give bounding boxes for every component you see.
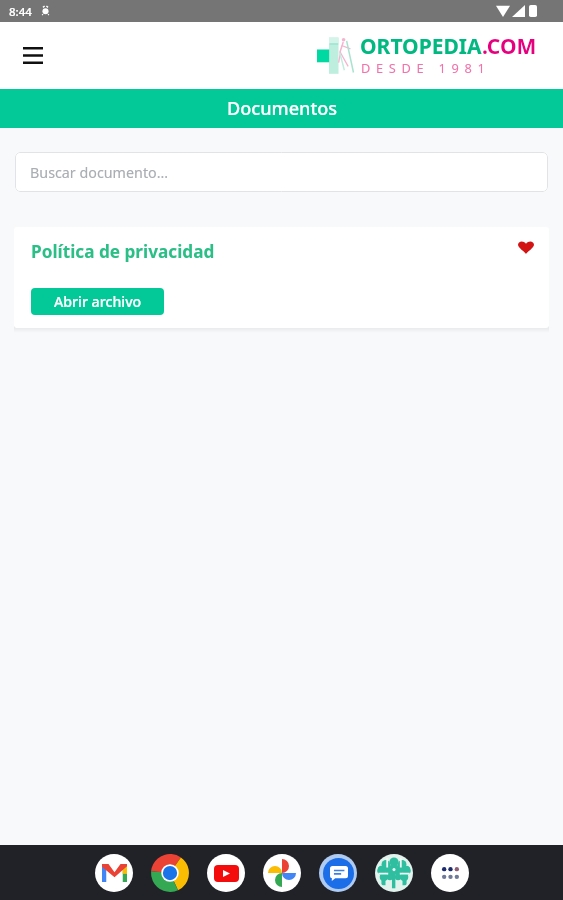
staticText: Buscar documento... — [30, 163, 169, 182]
button[interactable]: Gmail — [86, 845, 142, 900]
staticText: 8:44 — [9, 4, 32, 20]
button[interactable]: Política de privacidad — [14, 227, 549, 328]
button[interactable]: Mensajes — [310, 845, 366, 900]
staticText: Política de privacidad — [31, 240, 215, 263]
button[interactable]: Marcar como favorito — [513, 234, 539, 260]
staticText: DESDE 1981 — [361, 59, 491, 76]
button[interactable]: Abrir archivo — [31, 288, 164, 315]
button[interactable]: Buscar documento... — [15, 152, 548, 192]
button[interactable]: Chrome — [142, 845, 198, 900]
button[interactable]: Abrir menú — [14, 36, 52, 74]
staticText: Abrir archivo — [54, 292, 142, 311]
button[interactable]: Google Fotos — [254, 845, 310, 900]
staticText: .COM — [482, 32, 537, 61]
button[interactable]: YouTube — [198, 845, 254, 900]
staticText: Documentos — [227, 96, 338, 121]
button[interactable]: Todas las aplicaciones — [422, 845, 478, 900]
button[interactable]: Ortopedia — [366, 845, 422, 900]
staticText: ORTOPEDIA — [360, 32, 482, 61]
